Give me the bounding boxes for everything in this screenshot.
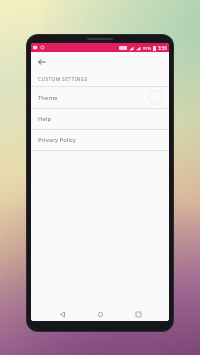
button[interactable]: Home bbox=[93, 307, 107, 321]
button[interactable]: Privacy Policy bbox=[31, 130, 169, 150]
staticText: CUSTOM SETTINGS bbox=[38, 76, 88, 83]
button[interactable]: Help bbox=[31, 109, 169, 129]
staticText: 91% bbox=[143, 46, 151, 51]
button[interactable]: Back bbox=[55, 307, 69, 321]
staticText: Privacy Policy bbox=[38, 136, 76, 144]
button[interactable]: Theme bbox=[31, 87, 169, 108]
staticText: Theme bbox=[38, 94, 58, 102]
staticText: 3:56 bbox=[158, 45, 167, 51]
staticText: Help bbox=[38, 115, 52, 123]
button[interactable]: Recent apps bbox=[131, 307, 145, 321]
button[interactable]: Back bbox=[35, 55, 49, 69]
